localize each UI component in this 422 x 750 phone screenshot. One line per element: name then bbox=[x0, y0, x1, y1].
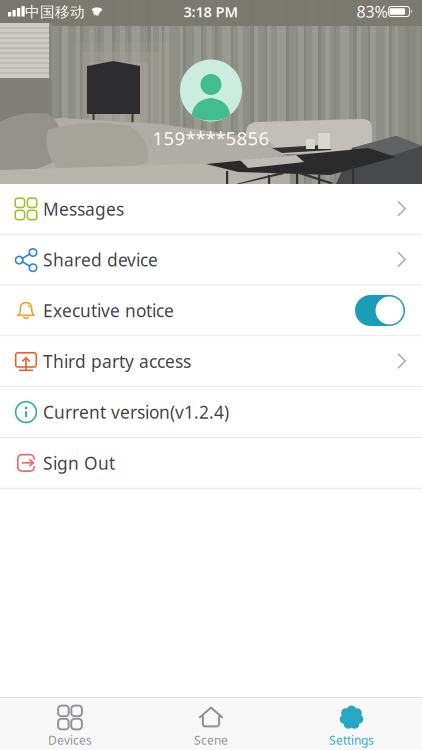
button[interactable]: Profile bbox=[141, 59, 281, 151]
staticText: Scene bbox=[194, 732, 228, 748]
button[interactable]: Messages bbox=[0, 184, 422, 235]
staticText: Settings bbox=[329, 732, 374, 748]
staticText: 159****5856 bbox=[152, 126, 269, 150]
staticText: Sign Out bbox=[43, 451, 115, 474]
button[interactable]: Sign Out bbox=[0, 438, 422, 489]
staticText: 3:18 PM bbox=[183, 2, 238, 21]
button[interactable]: Shared device bbox=[0, 235, 422, 286]
button[interactable]: Executive notice on bbox=[355, 295, 405, 326]
staticText: Third party access bbox=[43, 350, 191, 373]
staticText: Devices bbox=[48, 732, 92, 748]
staticText: Shared device bbox=[43, 248, 158, 271]
staticText: Messages bbox=[43, 197, 124, 220]
button[interactable]: Settings bbox=[281, 705, 421, 746]
button[interactable]: Devices bbox=[0, 705, 140, 746]
staticText: Current version(v1.2.4) bbox=[43, 401, 229, 424]
button[interactable]: Third party access bbox=[0, 336, 422, 387]
button[interactable]: Scene bbox=[141, 705, 281, 746]
staticText: 中国移动 bbox=[25, 3, 85, 21]
staticText: Executive notice bbox=[43, 299, 174, 322]
staticText: 83% bbox=[356, 1, 387, 22]
